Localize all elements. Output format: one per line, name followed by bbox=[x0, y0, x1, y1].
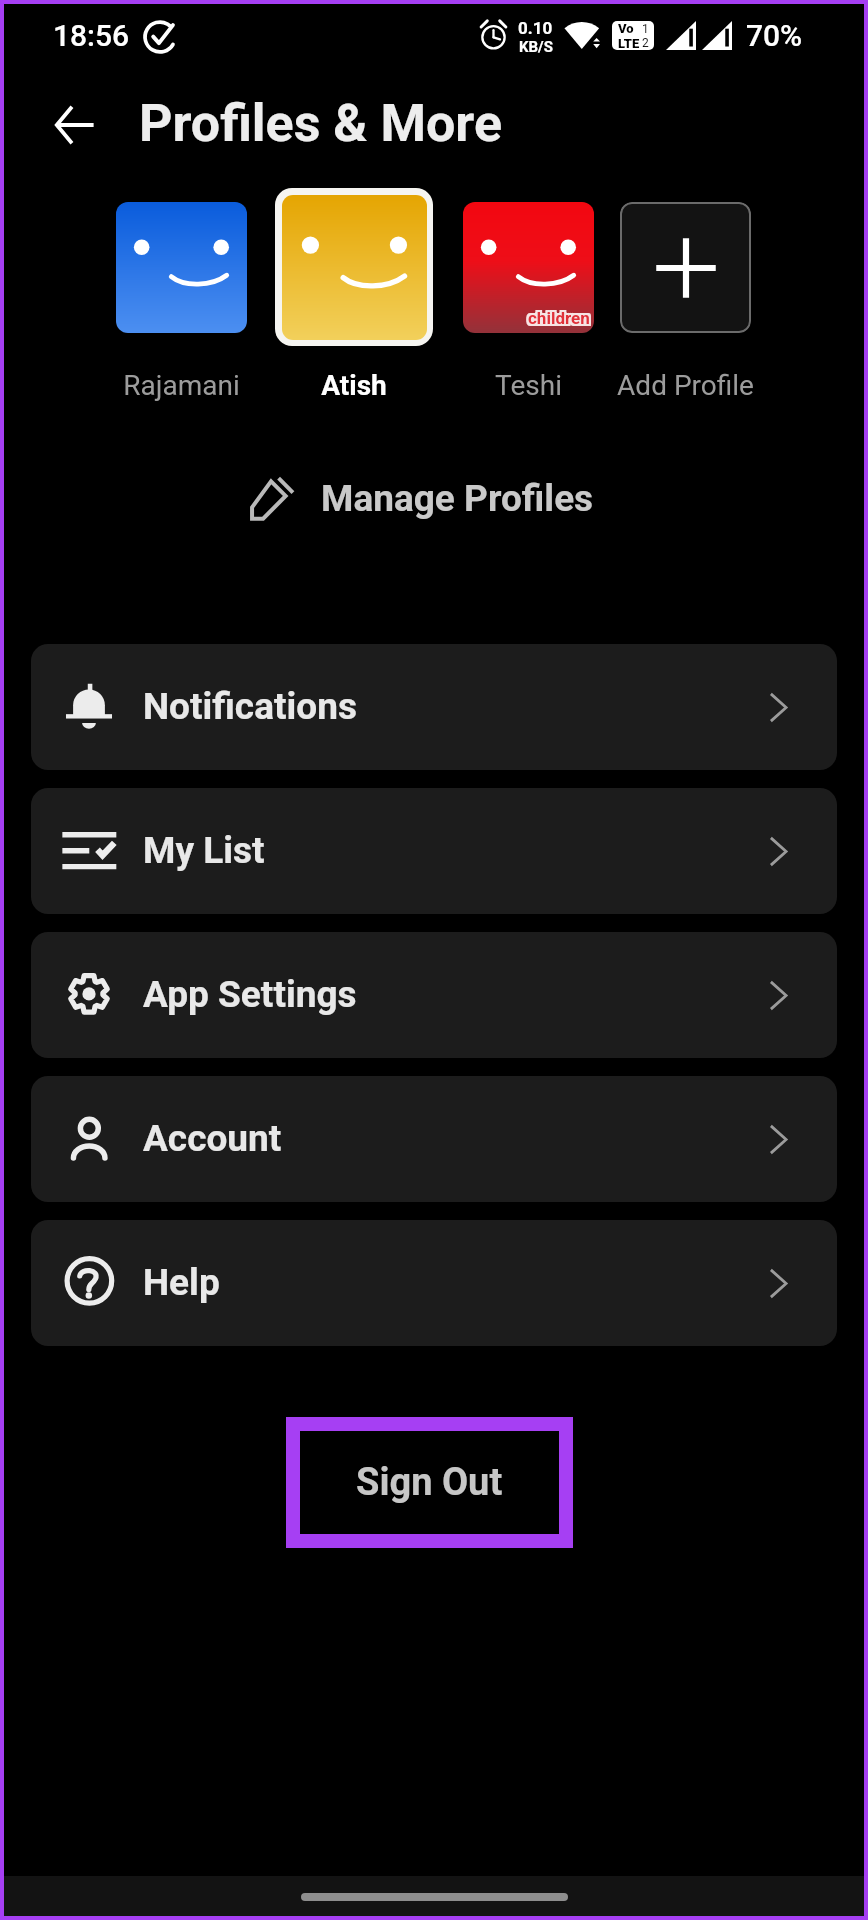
staticText: KB/S bbox=[519, 38, 553, 56]
staticText: My List bbox=[143, 829, 265, 872]
button[interactable]: children bbox=[443, 188, 613, 402]
staticText: children bbox=[526, 308, 588, 328]
staticText: 70% bbox=[746, 18, 803, 53]
staticText: Sign Out bbox=[356, 1460, 503, 1505]
button[interactable]: My List bbox=[31, 788, 837, 914]
staticText: Rajamani bbox=[123, 369, 240, 402]
button[interactable]: Sign Out bbox=[286, 1417, 573, 1548]
staticText: children bbox=[526, 306, 588, 326]
staticText: 1 bbox=[642, 22, 649, 36]
staticText: Manage Profiles bbox=[321, 477, 594, 520]
staticText: children bbox=[528, 306, 590, 326]
staticText: Help bbox=[143, 1261, 220, 1304]
staticText: Account bbox=[143, 1117, 282, 1160]
staticText: children bbox=[528, 310, 590, 330]
button[interactable]: Notifications bbox=[31, 644, 837, 770]
staticText: children bbox=[530, 308, 592, 328]
button[interactable]: App Settings bbox=[31, 932, 837, 1058]
staticText: Profiles & More bbox=[139, 93, 502, 154]
staticText: Vo bbox=[618, 21, 634, 36]
staticText: Add Profile bbox=[617, 369, 754, 402]
staticText: Notifications bbox=[143, 685, 357, 728]
staticText: children bbox=[528, 308, 590, 328]
button[interactable]: Atish bbox=[269, 188, 439, 402]
button[interactable]: Back bbox=[35, 85, 115, 165]
button[interactable]: Account bbox=[31, 1076, 837, 1202]
staticText: 2 bbox=[642, 36, 649, 50]
button[interactable]: Help bbox=[31, 1220, 837, 1346]
staticText: App Settings bbox=[143, 973, 357, 1016]
staticText: children bbox=[526, 310, 588, 330]
button[interactable]: Manage Profiles bbox=[249, 475, 594, 522]
staticText: 0.10 bbox=[518, 18, 553, 38]
staticText: Atish bbox=[321, 369, 387, 402]
button[interactable]: Add Profile bbox=[600, 188, 770, 402]
staticText: children bbox=[530, 306, 592, 326]
staticText: 18:56 bbox=[53, 18, 130, 53]
staticText: Teshi bbox=[495, 369, 562, 402]
staticText: LTE bbox=[618, 36, 640, 50]
staticText: children bbox=[530, 310, 592, 330]
button[interactable]: Rajamani bbox=[96, 188, 266, 402]
